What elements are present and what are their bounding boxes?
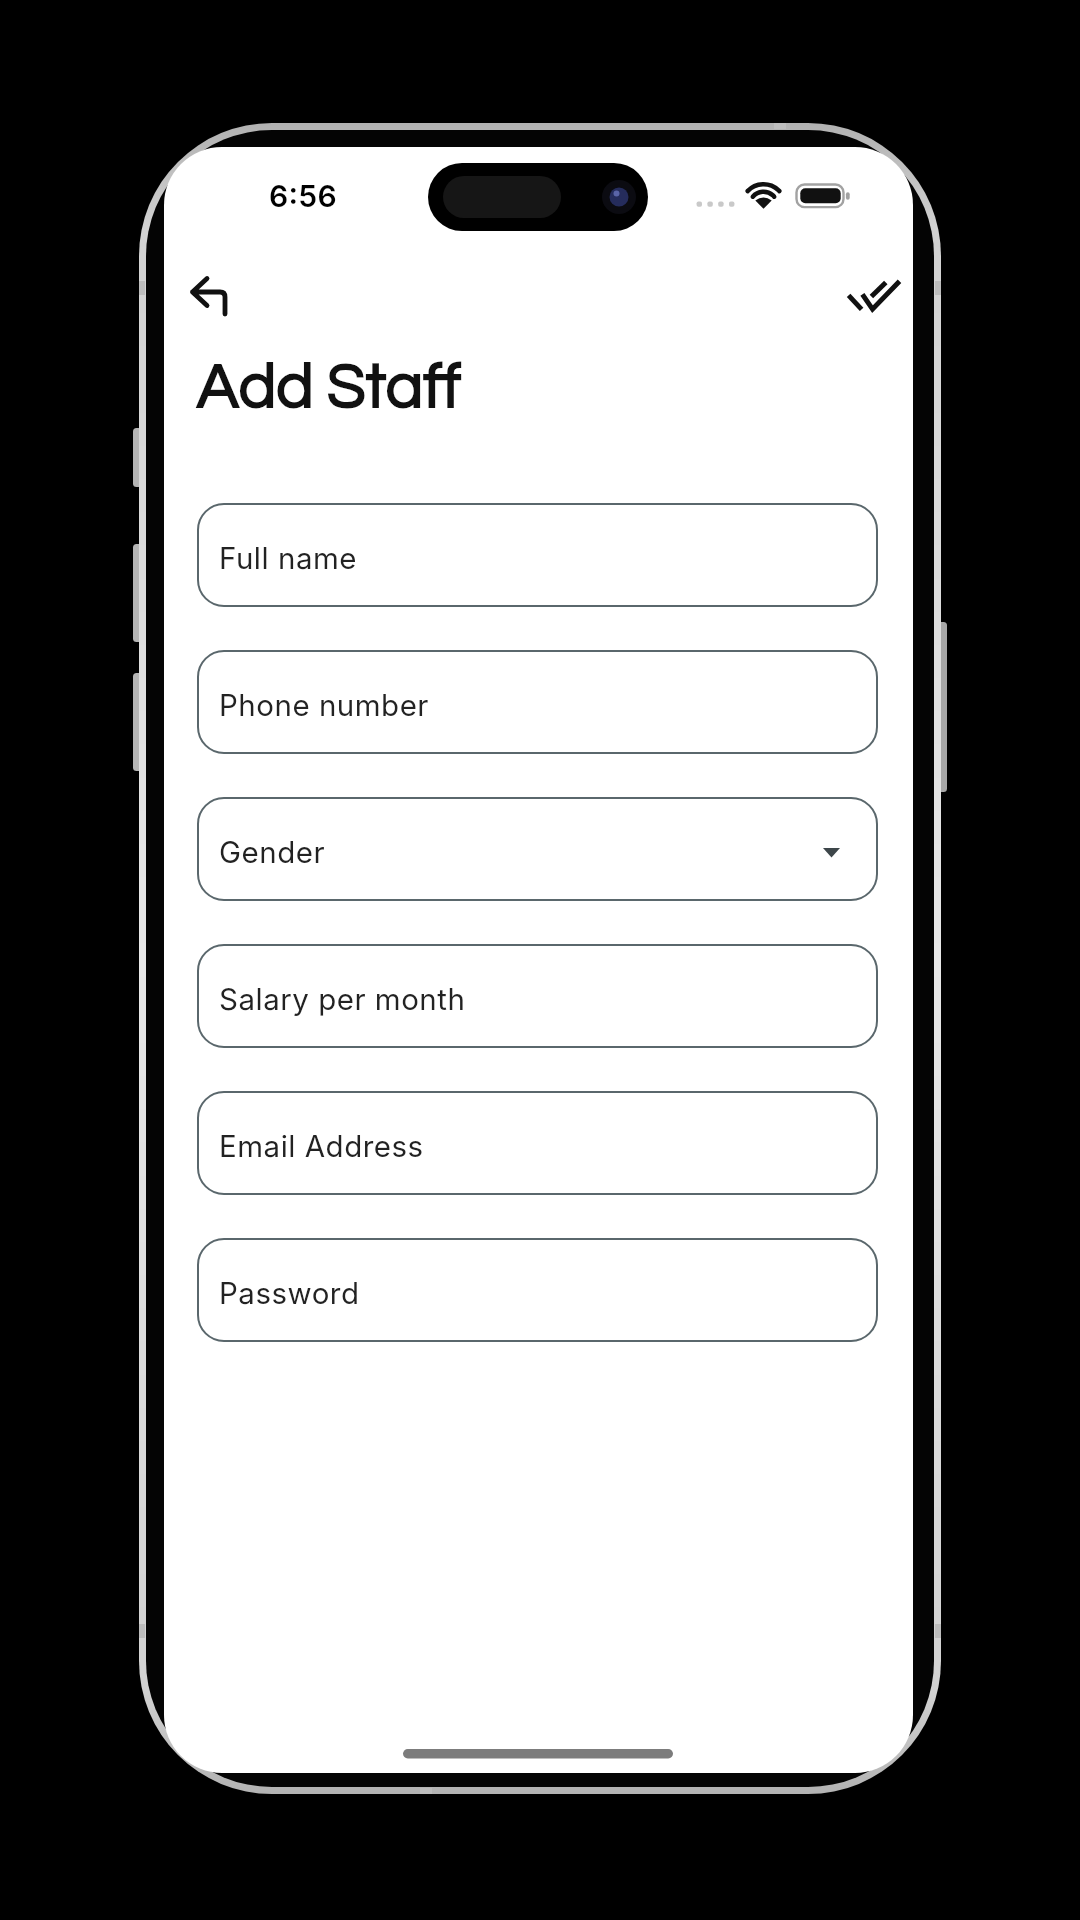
staticText: Email Address (219, 1128, 424, 1164)
staticText: Add Staff (197, 355, 462, 420)
button[interactable]: Full name (197, 503, 878, 607)
staticText: Phone number (219, 687, 429, 723)
staticText: Gender (219, 834, 326, 870)
button[interactable]: Phone number (197, 650, 878, 754)
button[interactable]: Salary per month (197, 944, 878, 1048)
staticText: Password (219, 1275, 360, 1311)
button[interactable]: Password (197, 1238, 878, 1342)
button[interactable] (182, 268, 238, 324)
staticText: Full name (219, 540, 357, 576)
button[interactable]: Email Address (197, 1091, 878, 1195)
staticText: 6:56 (269, 178, 338, 214)
button[interactable] (844, 267, 904, 323)
staticText: Salary per month (219, 981, 466, 1017)
button[interactable]: Gender (197, 797, 878, 901)
